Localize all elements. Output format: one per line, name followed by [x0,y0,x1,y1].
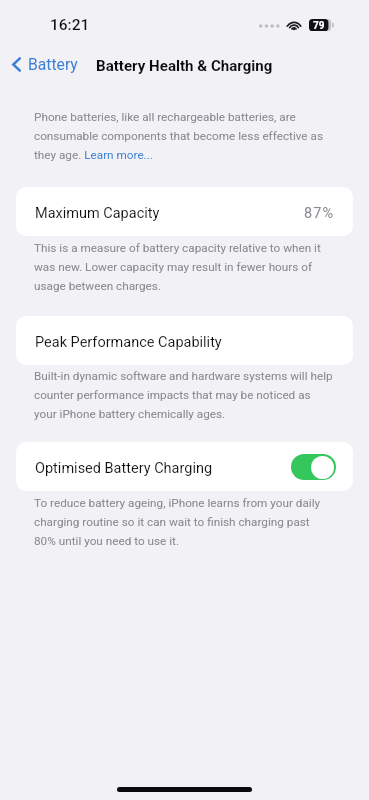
staticText: 16:21 [50,16,90,34]
button[interactable]: Battery [6,51,86,77]
button[interactable]: Maximum Capacity [16,187,353,236]
staticText: 79 [313,20,325,32]
staticText: To reduce battery ageing, iPhone learns … [34,496,333,548]
staticText: Peak Performance Capability [35,334,222,351]
staticText: Phone batteries, like all rechargeable b… [34,110,333,162]
staticText: Battery [28,55,78,73]
staticText: 87% [304,205,335,222]
staticText: Maximum Capacity [35,205,160,222]
button[interactable]: Peak Performance Capability [16,316,353,365]
staticText: This is a measure of battery capacity re… [34,241,333,293]
button[interactable]: Optimised Battery Charging, on [291,454,336,480]
staticText: Battery Health & Charging [96,57,273,75]
staticText: Built-in dynamic software and hardware s… [34,369,333,421]
staticText: Optimised Battery Charging [35,460,213,477]
button[interactable]: Learn more... [85,149,152,161]
button[interactable]: Optimised Battery Charging [16,442,353,491]
